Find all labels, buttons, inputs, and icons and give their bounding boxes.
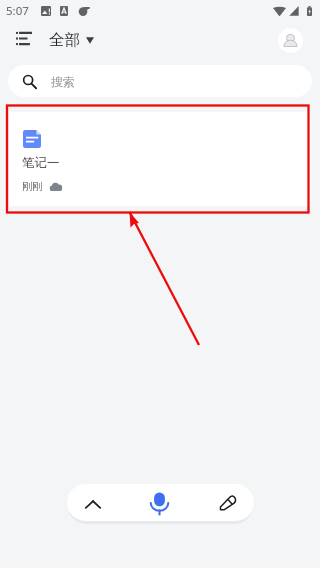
staticText: 刚刚	[22, 180, 42, 193]
staticText: 笔记一	[22, 155, 60, 171]
button[interactable]: 笔记一	[9, 112, 311, 206]
staticText: 5:07	[6, 3, 29, 19]
button[interactable]: Expand	[74, 486, 111, 523]
button[interactable]: Account	[278, 28, 303, 53]
button[interactable]: Voice note	[141, 485, 178, 522]
button[interactable]: New note	[209, 484, 246, 521]
button[interactable]: 搜索	[8, 65, 312, 97]
button[interactable]: Navigation menu	[8, 23, 39, 54]
button[interactable]: 全部	[45, 27, 98, 53]
staticText: 全部	[49, 30, 80, 50]
staticText: 搜索	[51, 74, 75, 89]
